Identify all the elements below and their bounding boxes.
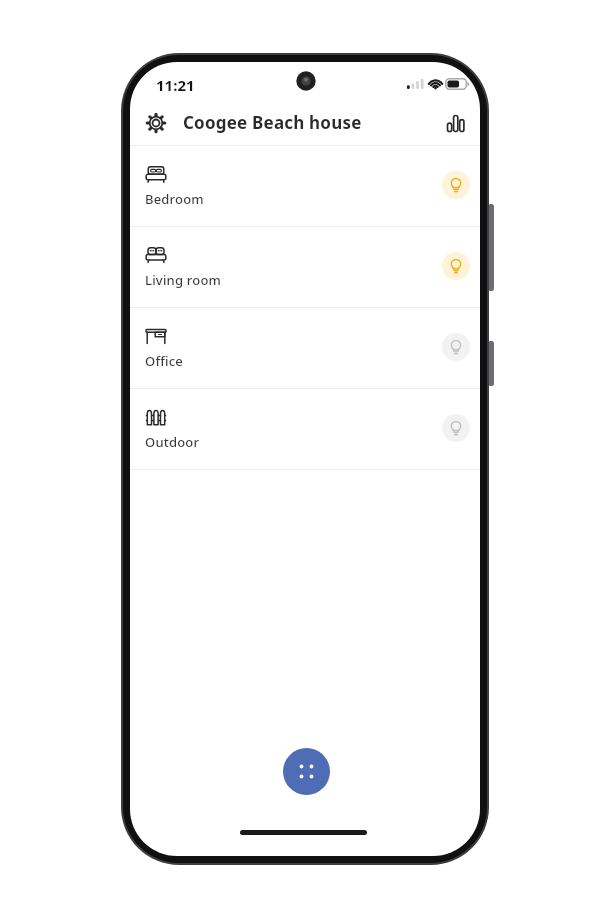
button[interactable]: Bedroom (130, 146, 480, 226)
button[interactable] (283, 748, 330, 795)
staticText: Outdoor (145, 433, 200, 451)
button[interactable] (442, 414, 470, 442)
button[interactable]: Living room (130, 227, 480, 307)
staticText: Coogee Beach house (183, 111, 362, 134)
staticText: 11:21 (156, 75, 195, 95)
button[interactable] (442, 333, 470, 361)
staticText: Office (145, 352, 184, 370)
button[interactable] (442, 171, 470, 199)
button[interactable] (442, 252, 470, 280)
button[interactable]: Outdoor (130, 389, 480, 469)
button[interactable] (444, 111, 468, 135)
button[interactable] (144, 111, 168, 135)
staticText: Bedroom (145, 190, 204, 208)
button[interactable]: Office (130, 308, 480, 388)
staticText: Living room (145, 271, 222, 289)
